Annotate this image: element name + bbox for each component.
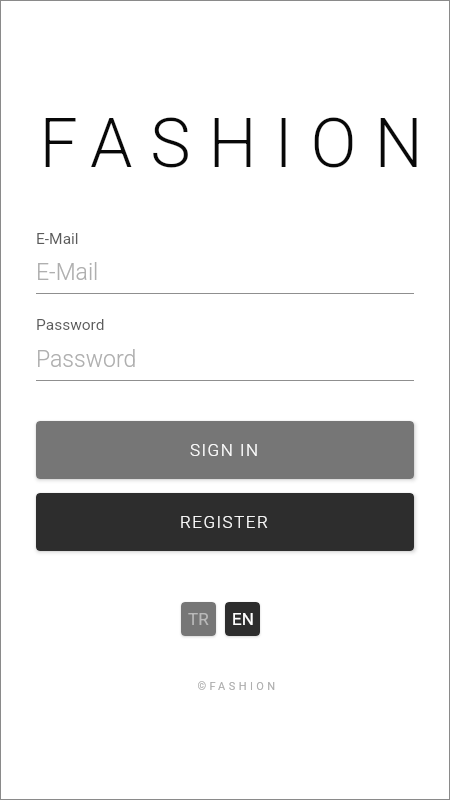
staticText: REGISTER [180,512,270,532]
staticText: EN [232,609,254,629]
staticText: ©FASHION [13,680,450,693]
button[interactable]: TR [181,602,216,636]
staticText: SIGN IN [190,440,260,460]
staticText: E-Mail [36,259,99,286]
staticText: Password [36,316,105,334]
button[interactable]: SIGN IN [36,421,414,479]
button[interactable]: EN [225,602,260,636]
staticText: Password [36,346,137,373]
button[interactable]: Password input field [36,346,414,381]
button[interactable]: E-Mail input field [36,259,414,294]
staticText: FASHION [15,104,450,184]
staticText: TR [188,609,209,629]
button[interactable]: REGISTER [36,493,414,551]
staticText: E-Mail [36,230,79,248]
